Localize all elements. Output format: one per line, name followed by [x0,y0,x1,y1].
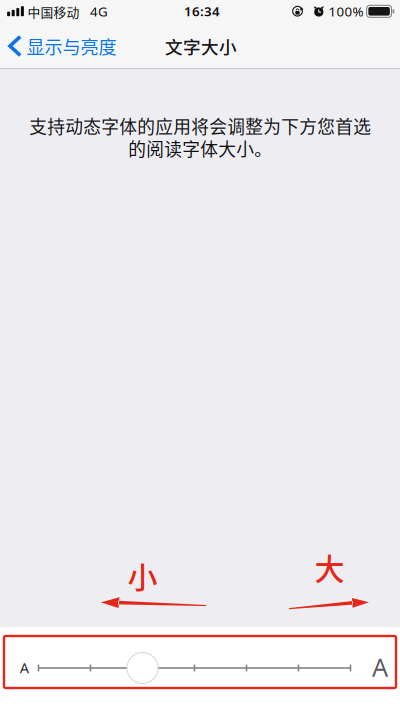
staticText: A [372,650,388,684]
button[interactable]: Text size slider thumb [127,652,158,683]
button[interactable]: 显示与亮度 [0,24,124,68]
staticText: A [20,658,29,677]
staticText: 中国移动 [27,2,79,21]
staticText: 16:34 [184,2,220,20]
staticText: 4G [90,2,108,20]
staticText: 小 [127,554,157,597]
staticText: 大 [314,545,344,589]
staticText: 支持动态字体的应用将会调整为下方您首选 的阅读字体大小。 [29,113,371,161]
staticText: 文字大小 [165,33,237,59]
staticText: 100% [328,2,363,20]
staticText: 显示与亮度 [26,33,116,59]
